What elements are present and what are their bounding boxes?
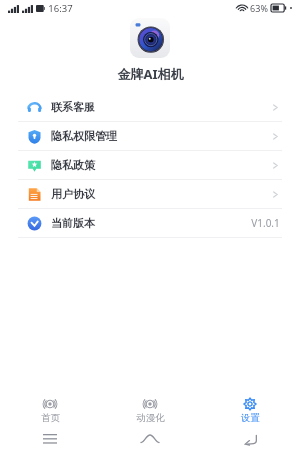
button[interactable]: 动漫化 [100, 394, 200, 428]
staticText: 设置 [241, 412, 260, 424]
staticText: 隐私政策 [51, 158, 95, 172]
staticText: 隐私权限管理 [51, 129, 117, 143]
button[interactable]: 首页 [0, 394, 100, 428]
staticText: 16:37 [48, 2, 73, 15]
button[interactable]: 当前版本 [4, 209, 296, 237]
button[interactable]: 隐私权限管理 [4, 122, 296, 150]
staticText: V1.0.1 [251, 216, 280, 230]
staticText: 63% [250, 2, 268, 14]
button[interactable]: 隐私政策 [4, 151, 296, 179]
button[interactable]: 设置 [200, 394, 300, 428]
button[interactable]: 用户协议 [4, 180, 296, 208]
button[interactable]: Recents [0, 428, 100, 450]
button[interactable]: Back [200, 428, 300, 450]
button[interactable]: Home [100, 428, 200, 450]
staticText: 首页 [41, 412, 60, 424]
staticText: 动漫化 [136, 412, 165, 424]
staticText: 当前版本 [51, 216, 95, 230]
button[interactable]: 联系客服 [4, 93, 296, 121]
staticText: 联系客服 [51, 100, 95, 114]
staticText: 用户协议 [51, 187, 95, 201]
staticText: 金牌AI相机 [117, 65, 184, 83]
